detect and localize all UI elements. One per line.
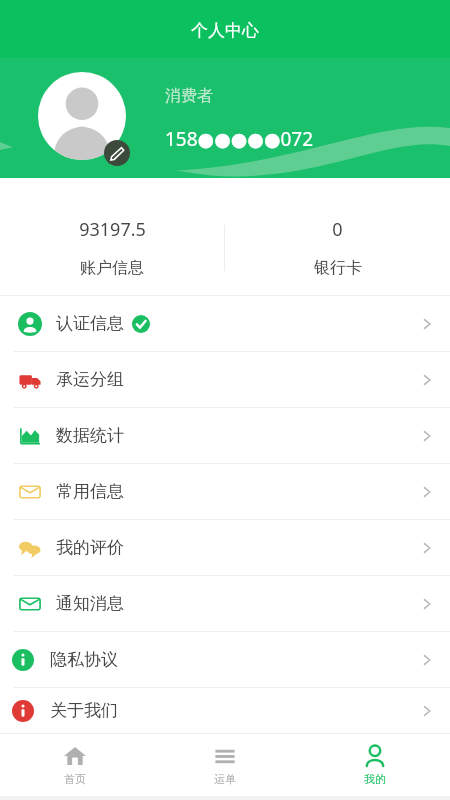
staticText: 个人中心 (191, 20, 259, 41)
staticText: 通知消息 (56, 593, 124, 614)
button[interactable]: Avatar (38, 72, 126, 160)
staticText: 账户信息 (80, 258, 144, 278)
staticText: 0 (332, 217, 343, 242)
staticText: 认证信息 (56, 313, 124, 334)
staticText: 常用信息 (56, 481, 124, 502)
button[interactable]: Edit avatar (104, 140, 130, 166)
button[interactable]: 常用信息 (0, 464, 450, 519)
button[interactable]: 0 (225, 200, 450, 295)
staticText: 消费者 (165, 86, 213, 106)
staticText: 首页 (64, 772, 86, 786)
staticText: 93197.5 (79, 217, 146, 242)
staticText: 隐私协议 (50, 649, 118, 670)
staticText: 承运分组 (56, 369, 124, 390)
button[interactable]: 我的评价 (0, 520, 450, 575)
button[interactable]: 我的 (300, 734, 450, 796)
button[interactable]: 承运分组 (0, 352, 450, 407)
staticText: 运单 (214, 772, 236, 786)
staticText: 关于我们 (50, 700, 118, 721)
button[interactable]: 93197.5 (0, 200, 224, 295)
staticText: 158●●●●●072 (165, 126, 314, 152)
staticText: 数据统计 (56, 425, 124, 446)
staticText: 我的 (364, 772, 386, 786)
button[interactable]: 数据统计 (0, 408, 450, 463)
button[interactable]: 首页 (0, 734, 150, 796)
button[interactable]: 认证信息 (0, 296, 450, 351)
button[interactable]: 运单 (150, 734, 300, 796)
button[interactable]: 关于我们 (0, 688, 450, 733)
button[interactable]: 通知消息 (0, 576, 450, 631)
staticText: 我的评价 (56, 537, 124, 558)
staticText: 银行卡 (314, 258, 362, 278)
button[interactable]: 隐私协议 (0, 632, 450, 687)
